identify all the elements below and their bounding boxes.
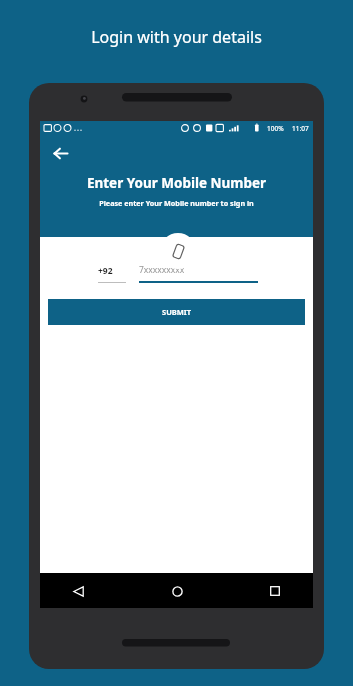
staticText: +92 xyxy=(98,265,113,277)
button[interactable]: Back xyxy=(45,138,75,168)
staticText: 7xxxxxxxxx xyxy=(139,264,185,276)
staticText: Enter Your Mobile Number xyxy=(40,174,313,192)
staticText: 11:07 xyxy=(292,124,309,133)
other: Mobile phone xyxy=(160,233,196,269)
button[interactable]: Back xyxy=(64,577,92,605)
button[interactable]: Recents xyxy=(261,577,289,605)
staticText: 100% xyxy=(267,124,284,133)
button[interactable]: Home xyxy=(163,577,191,605)
button[interactable]: SUBMIT xyxy=(48,299,305,325)
staticText: Login with your details xyxy=(0,26,353,48)
staticText: SUBMIT xyxy=(162,307,192,317)
staticText: Please enter Your Mobile number to sign … xyxy=(40,198,313,208)
